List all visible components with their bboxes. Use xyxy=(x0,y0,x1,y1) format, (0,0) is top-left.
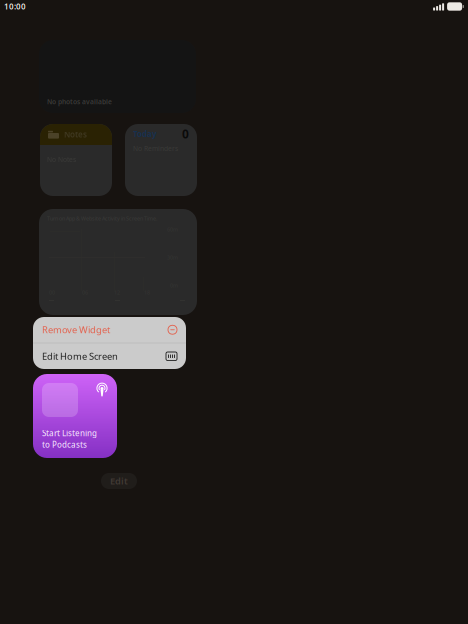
button[interactable]: No photos available xyxy=(39,40,196,113)
staticText: Notes xyxy=(64,129,87,140)
button[interactable]: Edit Home Screen xyxy=(33,343,186,369)
button[interactable]: Start Listening xyxy=(33,374,117,458)
button[interactable]: Notes xyxy=(40,124,112,196)
staticText: No Notes xyxy=(47,155,76,164)
staticText: No photos available xyxy=(47,97,112,106)
staticText: Turn on App & Website Activity in Screen… xyxy=(47,215,157,222)
button[interactable]: Today xyxy=(125,124,197,196)
button[interactable]: Remove Widget xyxy=(33,317,186,343)
staticText: 10:00 xyxy=(4,1,26,12)
button[interactable]: Edit xyxy=(101,473,137,489)
staticText: 0 xyxy=(182,126,189,142)
staticText: to Podcasts xyxy=(42,439,87,450)
staticText: Remove Widget xyxy=(42,324,110,336)
staticText: Today xyxy=(133,129,157,139)
staticText: Edit xyxy=(110,475,128,487)
staticText: Edit Home Screen xyxy=(42,350,118,362)
staticText: No Reminders xyxy=(133,144,178,153)
staticText: Start Listening xyxy=(42,428,97,438)
